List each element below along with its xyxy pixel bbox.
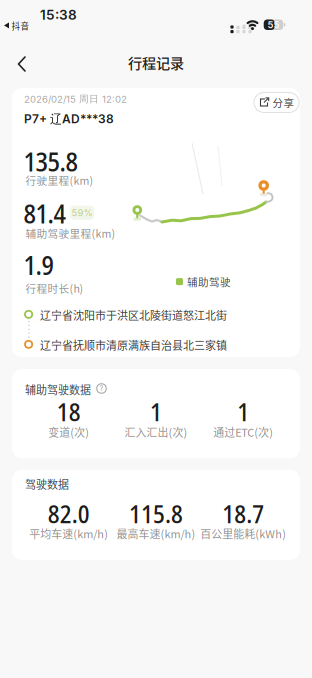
staticText: 辽宁省抚顺市清原满族自治县北三家镇: [40, 337, 227, 353]
staticText: 变道(次): [48, 424, 89, 440]
staticText: P7+ 辽AD***38: [24, 111, 114, 127]
button[interactable]: 分享: [254, 92, 299, 112]
staticText: 18.7: [222, 497, 264, 531]
staticText: 百公里能耗(kWh): [200, 525, 286, 541]
staticText: 最高车速(km/h): [116, 525, 195, 541]
staticText: 行驶里程(km): [25, 172, 93, 188]
staticText: 135.8: [23, 143, 77, 179]
staticText: 59%: [71, 207, 92, 218]
staticText: ?: [99, 384, 103, 393]
staticText: 15:38: [40, 6, 77, 23]
staticText: 辅助驾驶数据: [25, 381, 91, 397]
staticText: 18: [57, 395, 81, 429]
staticText: 通过ETC(次): [213, 424, 273, 440]
staticText: 115.8: [129, 497, 183, 531]
staticText: 抖音: [11, 19, 29, 32]
staticText: 辽宁省沈阳市于洪区北陵街道怒江北街: [40, 307, 227, 323]
staticText: 平均车速(km/h): [29, 525, 108, 541]
staticText: 行程时长(h): [25, 280, 83, 296]
staticText: 81.4: [23, 195, 65, 231]
button[interactable]: Help: [96, 383, 106, 393]
staticText: 2026/02/15 周日 12:02: [24, 93, 127, 105]
staticText: 1: [150, 395, 162, 429]
staticText: 1: [237, 395, 249, 429]
staticText: 82.0: [48, 497, 90, 531]
staticText: 驾驶数据: [25, 476, 69, 492]
staticText: 分享: [272, 95, 294, 110]
staticText: 辅助驾驶: [187, 274, 231, 289]
staticText: 辅助驾驶里程(km): [25, 225, 115, 241]
staticText: 1.9: [23, 247, 53, 283]
staticText: 行程记录: [128, 52, 184, 72]
button[interactable]: Back: [8, 52, 44, 76]
staticText: 55: [267, 19, 279, 30]
staticText: 汇入汇出(次): [124, 424, 187, 440]
